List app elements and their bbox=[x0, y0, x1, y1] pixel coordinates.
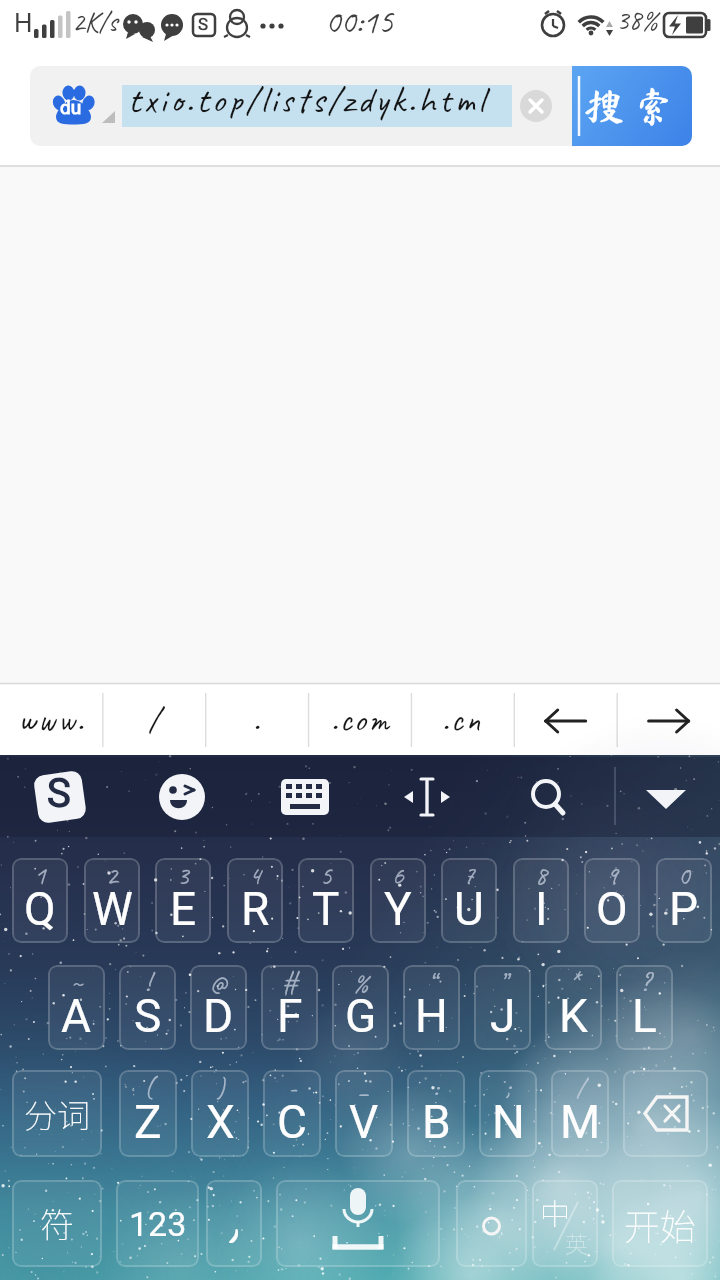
staticText: Y bbox=[384, 882, 412, 936]
button[interactable]: 9 bbox=[584, 858, 640, 943]
button[interactable]: 中 bbox=[532, 1180, 598, 1267]
button[interactable] bbox=[392, 762, 462, 832]
staticText: O bbox=[596, 882, 628, 936]
button[interactable] bbox=[520, 90, 552, 122]
button[interactable] bbox=[514, 762, 584, 832]
button[interactable] bbox=[456, 1180, 527, 1267]
staticText: 符 bbox=[40, 1199, 74, 1248]
staticText: 2K/s bbox=[72, 4, 118, 39]
staticText: / bbox=[576, 1071, 585, 1104]
staticText: I bbox=[535, 882, 548, 936]
staticText: W bbox=[92, 882, 133, 936]
button[interactable]: 4 bbox=[227, 858, 283, 943]
staticText: , bbox=[227, 1180, 241, 1259]
button[interactable]: 8 bbox=[513, 858, 569, 943]
staticText: # bbox=[282, 966, 297, 999]
staticText: S bbox=[198, 14, 209, 34]
button[interactable] bbox=[147, 762, 217, 832]
button[interactable]: * bbox=[545, 965, 602, 1050]
staticText: H bbox=[415, 989, 448, 1043]
staticText: T bbox=[312, 882, 340, 936]
staticText: . bbox=[253, 698, 262, 741]
button[interactable]: 搜索 bbox=[572, 66, 692, 146]
button[interactable]: 符 bbox=[12, 1180, 102, 1267]
staticText: _ bbox=[358, 1071, 370, 1104]
button[interactable]: 123 bbox=[116, 1180, 199, 1267]
staticText: / bbox=[148, 698, 162, 741]
button[interactable]: , bbox=[206, 1180, 262, 1267]
staticText: 搜索 bbox=[584, 86, 684, 126]
button[interactable]: ” bbox=[474, 965, 531, 1050]
staticText: * bbox=[569, 966, 579, 999]
staticText: www. bbox=[18, 698, 86, 741]
button[interactable]: .com bbox=[309, 683, 412, 755]
staticText: - bbox=[288, 1071, 297, 1104]
button[interactable] bbox=[276, 1180, 440, 1267]
button[interactable]: @ bbox=[190, 965, 247, 1050]
staticText: H bbox=[14, 8, 33, 38]
button[interactable]: 5 bbox=[298, 858, 354, 943]
staticText: : bbox=[433, 1071, 439, 1104]
button[interactable]: / bbox=[551, 1070, 609, 1157]
staticText: 0 bbox=[678, 859, 690, 892]
staticText: K bbox=[559, 989, 588, 1043]
staticText: M bbox=[560, 1095, 601, 1149]
staticText: ) bbox=[216, 1071, 225, 1104]
button[interactable]: www. bbox=[0, 683, 103, 755]
button[interactable]: 0 bbox=[656, 858, 712, 943]
staticText: D bbox=[203, 989, 234, 1043]
button[interactable]: 2 bbox=[84, 858, 140, 943]
button[interactable]: ) bbox=[191, 1070, 249, 1157]
staticText: L bbox=[632, 989, 657, 1043]
staticText: 3 bbox=[177, 859, 189, 892]
button[interactable]: 6 bbox=[370, 858, 426, 943]
button[interactable]: - bbox=[263, 1070, 321, 1157]
button[interactable]: : bbox=[407, 1070, 465, 1157]
button[interactable] bbox=[623, 1070, 708, 1157]
staticText: @ bbox=[210, 966, 227, 999]
staticText: ( bbox=[144, 1071, 153, 1104]
button[interactable]: 开始 bbox=[612, 1180, 708, 1267]
staticText: % bbox=[353, 966, 369, 999]
button[interactable]: % bbox=[332, 965, 389, 1050]
button[interactable]: ? bbox=[616, 965, 673, 1050]
button[interactable] bbox=[617, 683, 720, 755]
button[interactable]: 3 bbox=[155, 858, 211, 943]
button[interactable]: ! bbox=[119, 965, 176, 1050]
staticText: F bbox=[277, 989, 303, 1043]
button[interactable]: .cn bbox=[411, 683, 514, 755]
button[interactable]: # bbox=[261, 965, 318, 1050]
button[interactable] bbox=[25, 762, 95, 832]
button[interactable]: 分词 bbox=[12, 1070, 102, 1157]
staticText: ? bbox=[640, 966, 650, 999]
staticText: N bbox=[492, 1095, 525, 1149]
button[interactable]: . bbox=[206, 683, 309, 755]
button[interactable]: _ bbox=[335, 1070, 393, 1157]
button[interactable]: “ bbox=[403, 965, 460, 1050]
staticText: P bbox=[669, 882, 699, 936]
button[interactable]: / bbox=[103, 683, 206, 755]
button[interactable] bbox=[514, 683, 617, 755]
staticText: ~ bbox=[71, 966, 83, 999]
staticText: G bbox=[345, 989, 377, 1043]
staticText: du bbox=[60, 96, 82, 118]
button[interactable] bbox=[270, 762, 340, 832]
staticText: 38% bbox=[616, 2, 659, 37]
staticText: 中 bbox=[540, 1190, 570, 1233]
button[interactable] bbox=[631, 762, 701, 832]
button[interactable]: ~ bbox=[48, 965, 105, 1050]
staticText: X bbox=[206, 1095, 235, 1149]
button[interactable]: ; bbox=[479, 1070, 537, 1157]
button[interactable]: 1 bbox=[12, 858, 68, 943]
staticText: 分词 bbox=[24, 1090, 90, 1138]
staticText: “ bbox=[428, 966, 435, 999]
staticText: 1 bbox=[34, 859, 46, 892]
staticText: 123 bbox=[129, 1204, 187, 1244]
staticText: 9 bbox=[606, 859, 618, 892]
button[interactable]: 7 bbox=[441, 858, 497, 943]
button[interactable]: du bbox=[30, 66, 572, 146]
staticText: 英 bbox=[565, 1226, 588, 1259]
staticText: J bbox=[490, 989, 516, 1043]
button[interactable]: ( bbox=[119, 1070, 177, 1157]
staticText: A bbox=[61, 989, 92, 1043]
